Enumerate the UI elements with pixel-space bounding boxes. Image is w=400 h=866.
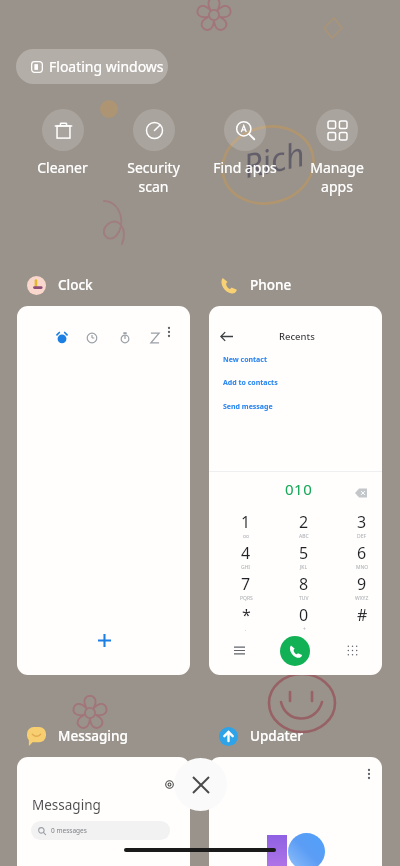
- button[interactable]: 0 messages: [31, 821, 170, 840]
- staticText: 5: [299, 542, 309, 564]
- button[interactable]: Messaging: [17, 757, 190, 866]
- staticText: .: [245, 626, 247, 633]
- button[interactable]: Call: [280, 636, 310, 666]
- button[interactable]: #: [334, 604, 382, 635]
- button[interactable]: Call log: [227, 638, 251, 662]
- staticText: 2: [299, 511, 309, 533]
- staticText: Find apps: [213, 158, 277, 177]
- button[interactable]: Tab: [51, 327, 73, 349]
- staticText: Recents: [279, 330, 315, 343]
- staticText: New contact: [223, 355, 267, 365]
- button[interactable]: Updater: [219, 725, 304, 747]
- staticText: JKL: [300, 564, 308, 571]
- staticText: Phone: [250, 276, 292, 294]
- button[interactable]: Add to contacts: [209, 375, 382, 391]
- button[interactable]: 4: [218, 542, 274, 573]
- button[interactable]: Tab: [81, 327, 103, 349]
- staticText: WXYZ: [355, 595, 369, 602]
- button[interactable]: Phone: [219, 274, 292, 296]
- staticText: GHI: [241, 564, 251, 571]
- button[interactable]: More options: [358, 763, 380, 785]
- staticText: #: [357, 604, 368, 626]
- button[interactable]: Messaging: [27, 725, 128, 747]
- staticText: 8: [299, 573, 309, 595]
- staticText: Clock: [58, 276, 93, 294]
- staticText: ABC: [299, 533, 309, 540]
- staticText: 4: [241, 542, 251, 564]
- button[interactable]: Keypad: [340, 638, 364, 662]
- staticText: Messaging: [32, 796, 101, 814]
- staticText: 9: [357, 573, 367, 595]
- button[interactable]: More options: [209, 757, 382, 866]
- button[interactable]: 9: [334, 573, 382, 604]
- staticText: oo: [243, 533, 250, 540]
- button[interactable]: 1: [218, 511, 274, 542]
- button[interactable]: Add alarm: [91, 627, 117, 653]
- button[interactable]: 7: [218, 573, 274, 604]
- button[interactable]: Tab: [17, 306, 190, 675]
- staticText: 6: [357, 542, 367, 564]
- staticText: 010: [285, 479, 313, 499]
- button[interactable]: 5: [276, 542, 332, 573]
- button[interactable]: Send message: [209, 399, 382, 415]
- staticText: DEF: [357, 533, 367, 540]
- staticText: Manage apps: [310, 158, 364, 196]
- button[interactable]: More options: [158, 321, 180, 343]
- button[interactable]: Cleaner: [17, 109, 108, 177]
- staticText: PQRS: [240, 595, 253, 602]
- button[interactable]: Security scan: [108, 109, 199, 196]
- staticText: 0: [299, 604, 309, 626]
- button[interactable]: 8: [276, 573, 332, 604]
- button[interactable]: Tab: [144, 327, 166, 349]
- button[interactable]: Backspace: [351, 484, 371, 504]
- button[interactable]: New contact: [209, 352, 382, 368]
- button[interactable]: *: [218, 604, 274, 635]
- button[interactable]: Floating windows: [16, 49, 168, 84]
- staticText: Add to contacts: [223, 378, 278, 388]
- button[interactable]: Clock: [27, 274, 93, 296]
- staticText: *: [242, 604, 251, 626]
- staticText: TUV: [299, 595, 309, 602]
- staticText: Send message: [223, 402, 273, 412]
- button[interactable]: Manage apps: [291, 109, 383, 196]
- staticText: MNO: [356, 564, 369, 571]
- button[interactable]: 3: [334, 511, 382, 542]
- staticText: Security scan: [127, 158, 180, 196]
- staticText: 3: [357, 511, 367, 533]
- button[interactable]: 2: [276, 511, 332, 542]
- button[interactable]: Recents: [209, 306, 382, 675]
- staticText: 7: [241, 573, 251, 595]
- button[interactable]: Tab: [114, 327, 136, 349]
- staticText: 0 messages: [51, 826, 87, 835]
- button[interactable]: 6: [334, 542, 382, 573]
- button[interactable]: 0: [276, 604, 332, 635]
- staticText: 1: [241, 511, 251, 533]
- staticText: Rich: [239, 131, 309, 188]
- staticText: Updater: [250, 727, 304, 745]
- staticText: Floating windows: [49, 57, 164, 76]
- staticText: Messaging: [58, 727, 128, 745]
- staticText: +: [303, 626, 306, 633]
- staticText: Cleaner: [37, 158, 88, 177]
- button[interactable]: Find apps: [199, 109, 291, 177]
- button[interactable]: Close all: [174, 758, 227, 811]
